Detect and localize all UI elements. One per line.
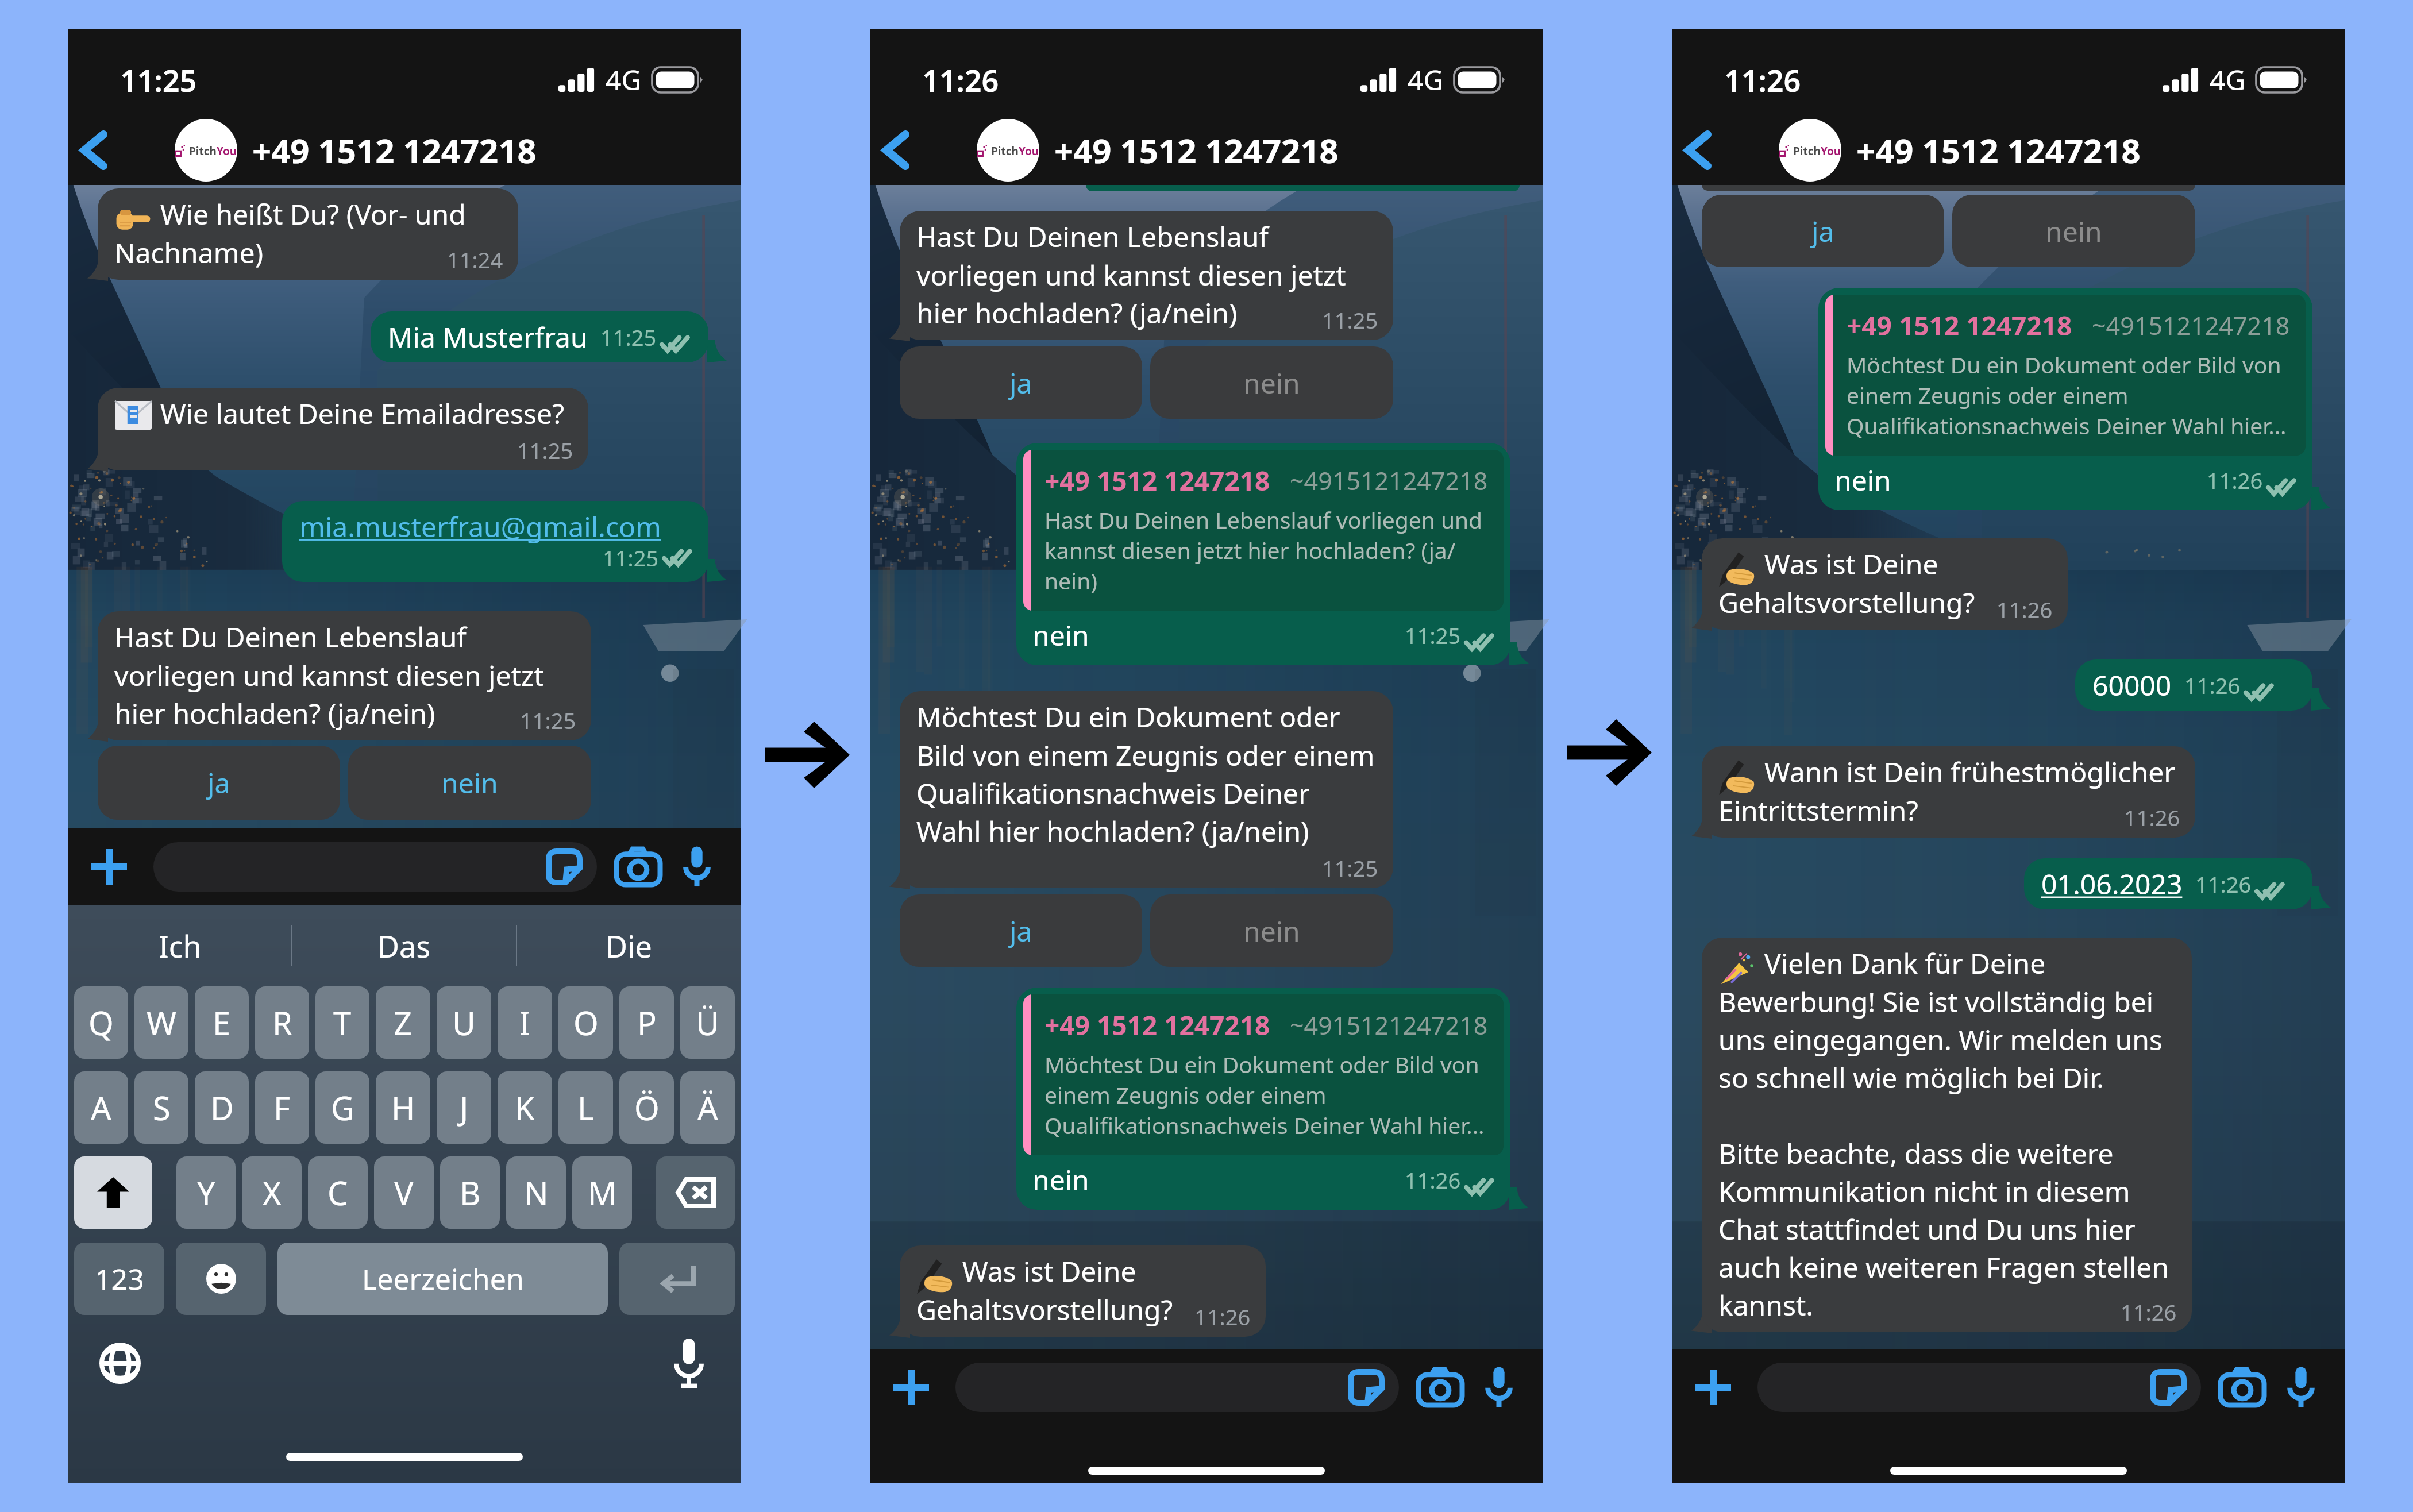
button[interactable]: E — [195, 986, 249, 1059]
staticText: Das — [377, 925, 431, 966]
button[interactable]: ja — [900, 894, 1142, 967]
button[interactable]: Message — [1757, 1363, 2201, 1412]
button[interactable]: Attach — [1685, 1359, 1741, 1415]
button[interactable]: nein — [348, 746, 591, 820]
staticText: U — [452, 1001, 476, 1044]
button[interactable]: Voice message — [1475, 1363, 1523, 1411]
button[interactable]: R — [255, 986, 309, 1059]
button[interactable]: Hast Du Deinen Lebenslauf vorliegen und … — [900, 211, 1393, 340]
button[interactable]: V — [374, 1156, 434, 1229]
button[interactable]: Vielen Dank für Deine Bewerbung! Sie ist… — [1702, 938, 2192, 1332]
button[interactable]: F — [255, 1071, 309, 1144]
button[interactable]: Q — [74, 986, 128, 1059]
button[interactable]: Möchtest Du ein Dokument oder Bild von e… — [900, 691, 1393, 888]
button[interactable]: P — [619, 986, 674, 1059]
staticText: Mia Musterfrau — [388, 318, 588, 356]
button[interactable]: nein — [1150, 346, 1393, 419]
staticText: G — [331, 1086, 354, 1129]
button[interactable]: +49 1512 1247218 — [1016, 443, 1510, 665]
button[interactable]: 123 — [74, 1243, 164, 1315]
button[interactable]: 01.06.2023 — [2024, 858, 2312, 909]
staticText: H — [391, 1086, 415, 1129]
button[interactable]: D — [195, 1071, 249, 1144]
button[interactable]: Wie lautet Deine Emailadresse? — [98, 388, 588, 470]
button[interactable]: N — [506, 1156, 566, 1229]
button[interactable]: M — [572, 1156, 632, 1229]
button[interactable]: G — [315, 1071, 369, 1144]
button[interactable]: Hast Du Deinen Lebenslauf vorliegen und … — [98, 611, 591, 740]
staticText: Was ist Deine Gehaltsvorstellung? — [916, 1252, 1251, 1328]
button[interactable]: 60000 — [2075, 659, 2312, 711]
button[interactable]: Z — [376, 986, 430, 1059]
staticText: You — [1821, 144, 1841, 159]
staticText: 11:25 — [600, 322, 657, 352]
button[interactable]: Return — [619, 1243, 735, 1315]
button[interactable]: Leerzeichen — [277, 1243, 608, 1315]
button[interactable]: X — [242, 1156, 302, 1229]
button[interactable]: Backspace — [656, 1156, 735, 1229]
button[interactable]: S — [134, 1071, 188, 1144]
button[interactable]: Was ist Deine Gehaltsvorstellung? — [1702, 538, 2068, 630]
staticText: S — [153, 1086, 171, 1129]
button[interactable]: ja — [98, 746, 340, 820]
button[interactable]: nein — [1952, 195, 2195, 267]
button[interactable]: Das — [292, 905, 516, 986]
button[interactable]: Emoji — [176, 1243, 266, 1315]
button[interactable]: Y — [176, 1156, 236, 1229]
button[interactable]: mia.musterfrau@gmail.com — [282, 501, 708, 582]
button[interactable]: Mia Musterfrau — [371, 311, 708, 362]
button[interactable]: Shift — [74, 1156, 152, 1229]
button[interactable]: nein — [1150, 894, 1393, 967]
staticText: ~4915121247218 — [1290, 1008, 1488, 1042]
button[interactable]: A — [74, 1071, 128, 1144]
button[interactable]: Attach — [883, 1359, 939, 1415]
button[interactable]: +49 1512 1247218 — [1016, 988, 1510, 1210]
button[interactable]: Was ist Deine Gehaltsvorstellung? — [900, 1245, 1266, 1337]
button[interactable]: C — [308, 1156, 368, 1229]
button[interactable]: Die — [517, 905, 741, 986]
button[interactable]: Camera — [613, 842, 664, 892]
button[interactable]: J — [437, 1071, 491, 1144]
staticText: Die — [606, 925, 652, 966]
button[interactable]: Wie heißt Du? (Vor- und Nachname) — [98, 188, 518, 280]
button[interactable]: Back — [1672, 115, 1779, 185]
staticText: J — [460, 1086, 469, 1129]
button[interactable]: B — [440, 1156, 500, 1229]
button[interactable]: Dictate — [660, 1334, 718, 1392]
staticText: Wann ist Dein frühestmöglicher Eintritts… — [1718, 753, 2180, 829]
button[interactable]: Message — [153, 842, 597, 892]
staticText: You — [217, 144, 237, 159]
button[interactable]: Voice message — [673, 843, 721, 891]
button[interactable]: Camera — [1415, 1362, 1466, 1413]
button[interactable]: Back — [870, 115, 977, 185]
button[interactable]: Message — [955, 1363, 1399, 1412]
button[interactable]: L — [558, 1071, 613, 1144]
button[interactable]: +49 1512 1247218 — [1818, 288, 2312, 510]
button[interactable]: Back — [68, 115, 175, 185]
staticText: ja — [207, 764, 230, 801]
button[interactable]: T — [315, 986, 369, 1059]
button[interactable]: Wann ist Dein frühestmöglicher Eintritts… — [1702, 746, 2195, 838]
staticText: W — [147, 1001, 177, 1044]
button[interactable]: ja — [1702, 195, 1944, 267]
button[interactable]: O — [558, 986, 613, 1059]
button[interactable]: K — [498, 1071, 552, 1144]
button[interactable]: ja — [900, 346, 1142, 419]
staticText: C — [327, 1171, 348, 1214]
button[interactable]: Attach — [81, 839, 137, 895]
button[interactable]: Ü — [680, 986, 735, 1059]
staticText: +49 1512 1247218 — [252, 128, 537, 173]
button[interactable]: Ich — [68, 905, 291, 986]
button[interactable]: Change keyboard — [91, 1334, 149, 1392]
staticText: R — [272, 1001, 292, 1044]
button[interactable]: W — [134, 986, 188, 1059]
staticText: B — [460, 1171, 481, 1214]
button[interactable]: Camera — [2217, 1362, 2268, 1413]
staticText: +49 1512 1247218 — [1054, 128, 1339, 173]
button[interactable]: I — [498, 986, 552, 1059]
button[interactable]: Ä — [680, 1071, 735, 1144]
button[interactable]: U — [437, 986, 491, 1059]
button[interactable]: Voice message — [2277, 1363, 2325, 1411]
button[interactable]: Ö — [619, 1071, 674, 1144]
button[interactable]: H — [376, 1071, 430, 1144]
